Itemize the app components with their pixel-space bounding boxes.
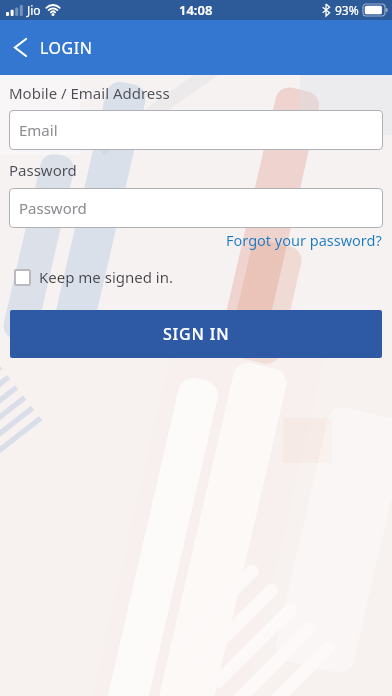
staticText: LOGIN bbox=[40, 37, 93, 59]
staticText: Mobile / Email Address bbox=[9, 83, 170, 103]
staticText: SIGN IN bbox=[163, 323, 230, 345]
staticText: 14:08 bbox=[179, 1, 213, 19]
staticText: Keep me signed in. bbox=[39, 267, 174, 287]
button[interactable]: Password bbox=[9, 188, 383, 228]
button[interactable]: Email bbox=[9, 110, 383, 150]
button[interactable]: Forgot your password? bbox=[226, 230, 392, 250]
staticText: 93% bbox=[335, 2, 359, 18]
staticText: Jio bbox=[27, 2, 41, 18]
staticText: Password bbox=[19, 198, 87, 218]
button[interactable] bbox=[0, 20, 40, 75]
button[interactable]: Keep me signed in. bbox=[14, 267, 174, 287]
button[interactable]: SIGN IN bbox=[10, 310, 382, 358]
staticText: Password bbox=[9, 160, 77, 180]
staticText: Email bbox=[19, 120, 58, 140]
